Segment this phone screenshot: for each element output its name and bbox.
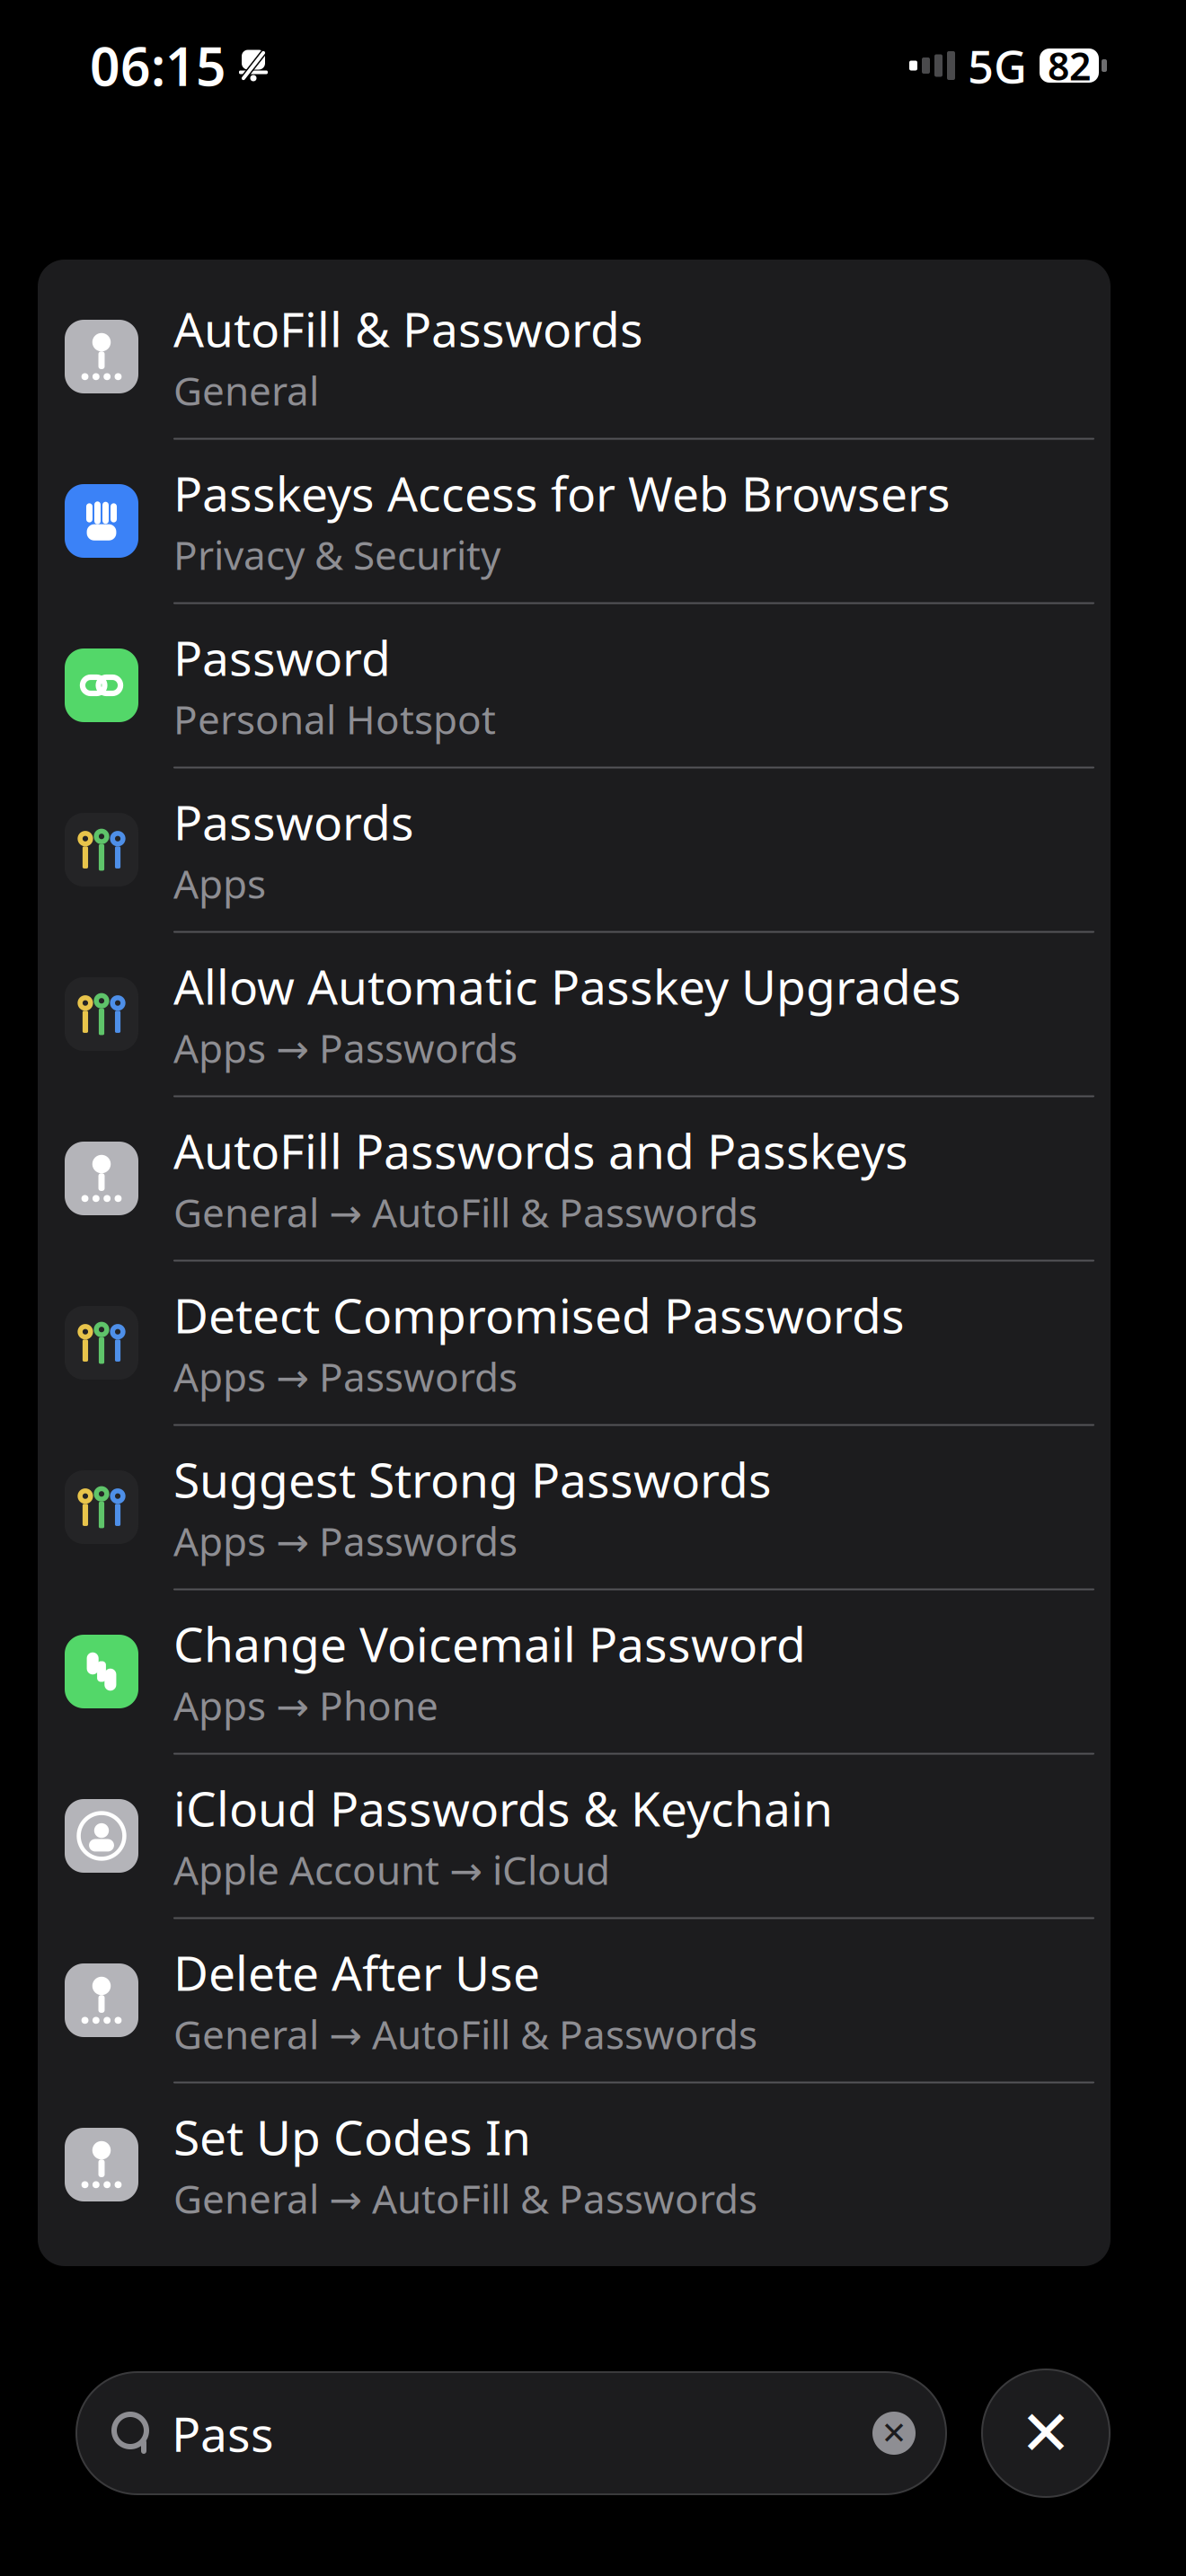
button[interactable]: Set Up Codes In [38, 2093, 1111, 2257]
staticText: 06:15 [90, 31, 226, 101]
button[interactable]: Allow Automatic Passkey Upgrades [38, 942, 1111, 1107]
button[interactable]: AutoFill Passwords and Passkeys [38, 1107, 1111, 1271]
staticText: Apps → Passwords [173, 1021, 518, 1074]
staticText: Apps → Phone [173, 1679, 438, 1731]
staticText: Password [173, 625, 391, 689]
button[interactable]: Passwords [38, 778, 1111, 942]
staticText: Privacy & Security [173, 528, 500, 581]
staticText: Detect Compromised Passwords [173, 1283, 905, 1347]
staticText: Passkeys Access for Web Browsers [173, 461, 951, 525]
button[interactable]: Delete After Use [38, 1928, 1111, 2093]
staticText: Apps [173, 857, 266, 910]
staticText: Pass [172, 2401, 274, 2465]
staticText: ✕ [1020, 2398, 1072, 2469]
staticText: General → AutoFill & Passwords [173, 2008, 757, 2060]
staticText: Delete After Use [173, 1940, 540, 2004]
button[interactable]: Passkeys Access for Web Browsers [38, 449, 1111, 613]
button[interactable]: Pass [76, 2372, 946, 2494]
staticText: 5G [968, 35, 1027, 96]
button[interactable]: Change Voicemail Password [38, 1600, 1111, 1764]
staticText: Personal Hotspot [173, 693, 496, 745]
staticText: Apps → Passwords [173, 1515, 518, 1567]
button[interactable]: Password [38, 613, 1111, 778]
staticText: AutoFill & Passwords [173, 297, 643, 360]
staticText: Suggest Strong Passwords [173, 1447, 772, 1511]
button[interactable]: Close search [982, 2369, 1110, 2497]
staticText: General → AutoFill & Passwords [173, 2172, 757, 2224]
staticText: Apps → Passwords [173, 1350, 518, 1403]
staticText: 82 [1048, 40, 1091, 91]
staticText: ✕ [881, 2415, 907, 2451]
staticText: Passwords [173, 790, 414, 853]
button[interactable]: AutoFill & Passwords [38, 285, 1111, 449]
staticText: Set Up Codes In [173, 2105, 531, 2168]
staticText: AutoFill Passwords and Passkeys [173, 1119, 908, 1182]
staticText: General → AutoFill & Passwords [173, 1186, 757, 1238]
button[interactable]: Suggest Strong Passwords [38, 1435, 1111, 1600]
button[interactable]: Detect Compromised Passwords [38, 1271, 1111, 1435]
staticText: Allow Automatic Passkey Upgrades [173, 954, 961, 1018]
staticText: Change Voicemail Password [173, 1612, 806, 1675]
staticText: General [173, 364, 319, 416]
staticText: iCloud Passwords & Keychain [173, 1776, 833, 1840]
staticText: Apple Account → iCloud [173, 1843, 610, 1896]
button[interactable]: iCloud Passwords & Keychain [38, 1764, 1111, 1928]
